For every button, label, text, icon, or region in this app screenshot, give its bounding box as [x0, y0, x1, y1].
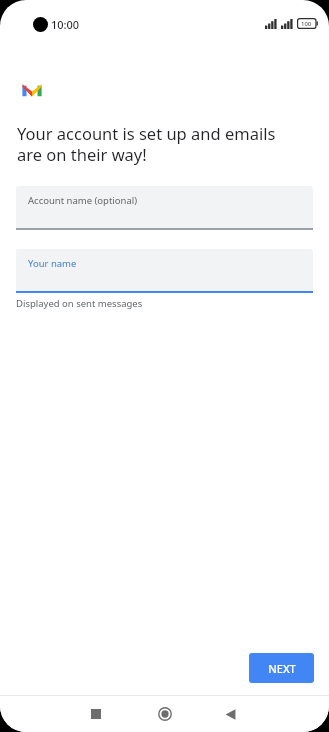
staticText: 100	[301, 20, 312, 28]
button[interactable]: Home	[145, 696, 185, 732]
staticText: Your name	[28, 257, 77, 270]
staticText: Your account is set up and emails are on…	[17, 122, 276, 166]
button[interactable]: NEXT	[249, 653, 314, 683]
button[interactable]: Your name	[16, 249, 313, 310]
staticText: 10:00	[51, 17, 80, 32]
button[interactable]: Recent apps	[76, 696, 116, 732]
staticText: Displayed on sent messages	[16, 297, 143, 310]
staticText: NEXT	[268, 661, 296, 676]
button[interactable]: Back	[210, 696, 250, 732]
staticText: Account name (optional)	[28, 194, 138, 207]
button[interactable]: Account name (optional)	[16, 186, 313, 230]
